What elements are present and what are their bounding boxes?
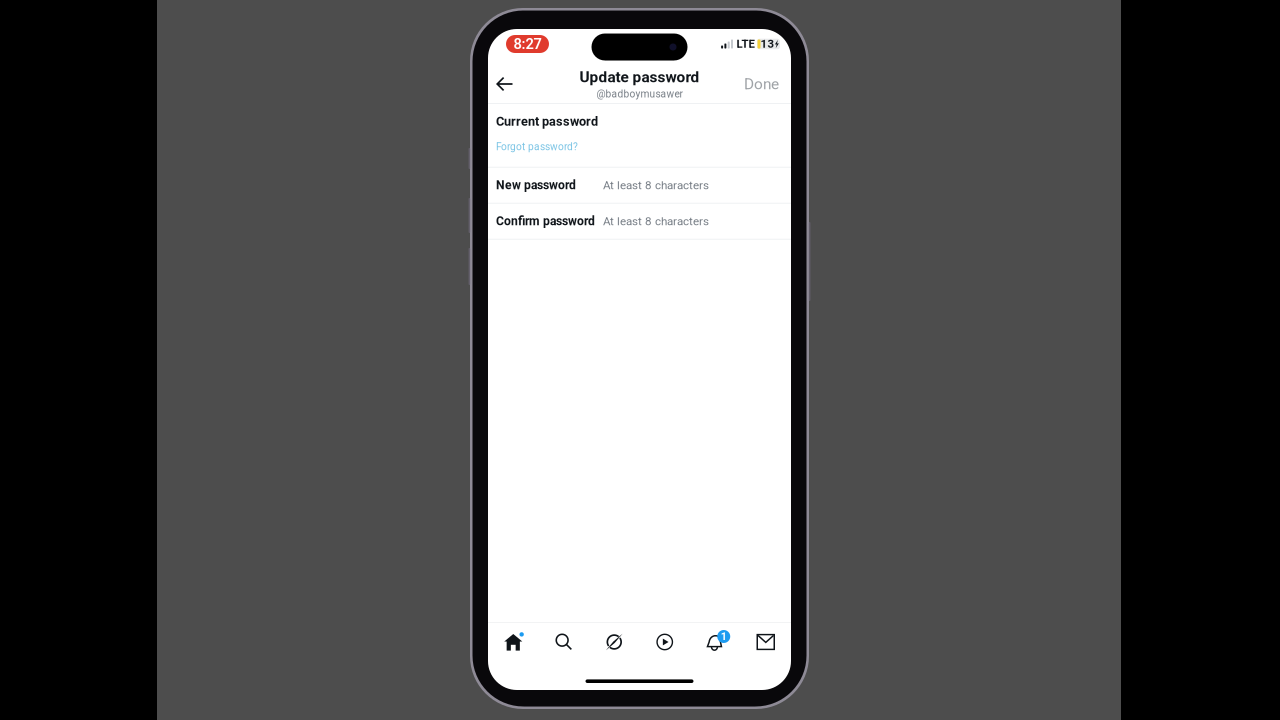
staticText: @badboymusawer (596, 88, 682, 100)
staticText: At least 8 characters (603, 214, 709, 228)
button[interactable]: Done (742, 63, 781, 105)
staticText: New password (496, 178, 576, 192)
button[interactable]: Video (639, 623, 690, 661)
button[interactable]: Grok (589, 623, 639, 661)
staticText: Update password (579, 68, 699, 86)
staticText: Confirm password (496, 214, 595, 228)
staticText: LTE (736, 37, 754, 51)
staticText: 8:27 (513, 35, 541, 53)
staticText: 1 (721, 630, 727, 643)
staticText: 13 (760, 37, 774, 51)
button[interactable]: Messages (740, 623, 791, 661)
staticText: Forgot password? (496, 141, 578, 153)
staticText: Done (744, 75, 779, 93)
button[interactable]: Back (489, 63, 521, 105)
button[interactable]: Home (488, 623, 538, 661)
button[interactable]: Notifications (690, 623, 740, 661)
button[interactable]: Forgot password? (496, 129, 783, 167)
button[interactable]: Search (538, 623, 589, 661)
staticText: At least 8 characters (603, 178, 709, 192)
staticText: Current password (496, 114, 598, 129)
